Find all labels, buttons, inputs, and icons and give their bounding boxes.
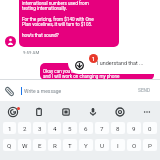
staticText: E [38,142,42,149]
button[interactable]: 8 [111,122,125,134]
staticText: international numbers used from [22,1,89,6]
staticText: P [148,142,152,149]
staticText: I [117,142,119,149]
button[interactable]: Stickers [52,101,79,122]
button[interactable]: Contact avatar [5,36,16,47]
staticText: For the pricing, from $140 with One [22,17,94,22]
button[interactable]: Attach file [2,84,16,98]
button[interactable]: T [63,139,77,151]
button[interactable]: SEND [132,84,157,98]
other: Jump to latest message [75,61,84,70]
staticText: 2 [23,125,27,132]
staticText: 6 [84,125,88,132]
button[interactable]: I [111,139,125,151]
staticText: 1 [8,125,12,132]
staticText: I understand that ... [97,60,144,66]
staticText: 5 [68,125,72,132]
staticText: Okay can you do that please [43,69,101,74]
button[interactable]: More options [133,101,160,122]
staticText: 9 [132,125,136,132]
button[interactable]: Google search [0,101,26,122]
button[interactable]: P [143,139,157,151]
staticText: O [132,142,137,149]
button[interactable]: international numbers used from [19,0,119,47]
staticText: Y [84,142,88,149]
staticText: and I will work on changing my phone [43,74,120,79]
staticText: W [22,142,28,149]
staticText: SEND [138,88,151,94]
button[interactable]: 0 [143,122,157,134]
staticText: U [100,142,105,149]
button[interactable]: Okay can you do that please [40,63,154,80]
staticText: R [53,142,57,149]
staticText: how's that sound? [22,33,59,38]
button[interactable]: 9 [127,122,141,134]
staticText: 3 [38,125,42,132]
button[interactable]: O [127,139,141,151]
staticText: 8 [116,125,120,132]
button[interactable]: 5 [63,122,77,134]
button[interactable]: R [48,139,61,151]
button[interactable]: E [33,139,46,151]
staticText: Plan voicelines, it will turn to $105. [22,22,93,27]
button[interactable]: 6 [79,122,93,134]
button[interactable]: 2 [18,122,31,134]
button[interactable]: 1 [3,122,16,134]
staticText: 4 [53,125,57,132]
button[interactable]: 3 [33,122,46,134]
staticText: 0 [148,125,152,132]
button[interactable]: 4 [48,122,61,134]
button[interactable]: Q [3,139,16,151]
staticText: Q [7,142,12,149]
button[interactable]: Voice input [79,101,106,122]
staticText: Write a message [24,88,62,94]
staticText: texting internationally. [22,6,67,11]
button[interactable]: Jump to latest message [68,52,160,74]
button[interactable]: U [95,139,109,151]
button[interactable]: Clipboard [26,101,52,122]
button[interactable]: 7 [95,122,109,134]
button[interactable]: W [18,139,31,151]
staticText: 7 [100,125,104,132]
staticText: 1 [92,56,95,62]
staticText: 9:59 AM [23,50,40,55]
staticText: T [68,142,72,149]
button[interactable]: Y [79,139,93,151]
button[interactable]: Settings [106,101,133,122]
